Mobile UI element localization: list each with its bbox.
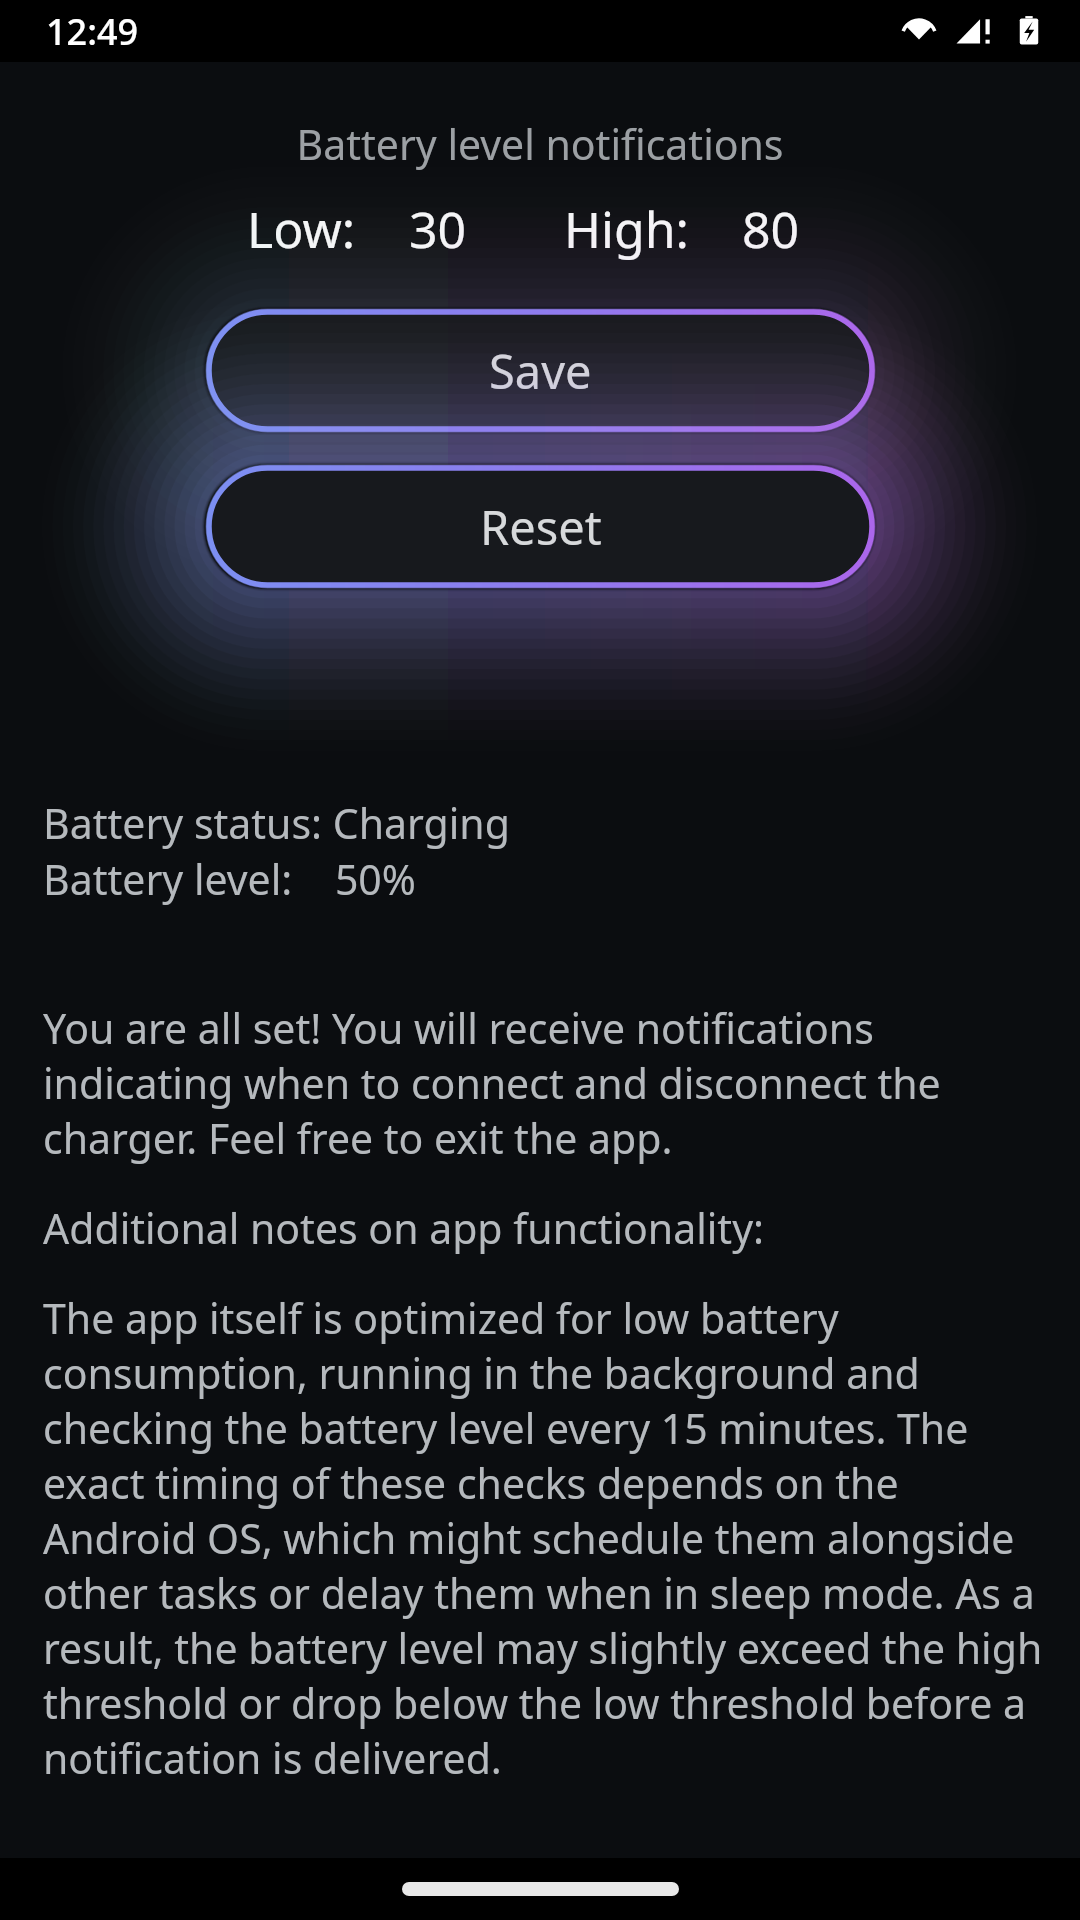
staticText: Battery status: Charging: [43, 795, 510, 851]
staticText: Battery level notifications: [0, 116, 1080, 172]
staticText: The app itself is optimized for low batt…: [43, 1290, 1046, 1786]
other: Wi-Fi: [898, 10, 940, 52]
button[interactable]: Save: [206, 309, 875, 432]
other: Mobile signal, no service: [954, 10, 996, 52]
staticText: Additional notes on app functionality:: [43, 1200, 765, 1256]
staticText: 12:49: [46, 7, 139, 56]
staticText: High:: [564, 195, 689, 263]
staticText: Save: [489, 339, 592, 403]
staticText: 30: [409, 195, 467, 263]
staticText: Low:: [247, 195, 356, 263]
button[interactable]: Reset: [206, 465, 875, 588]
other: Battery charging: [1008, 10, 1050, 52]
staticText: Reset: [480, 495, 602, 559]
staticText: You are all set! You will receive notifi…: [43, 1000, 1046, 1166]
staticText: Battery level: 50%: [43, 851, 416, 907]
staticText: 80: [742, 195, 800, 263]
